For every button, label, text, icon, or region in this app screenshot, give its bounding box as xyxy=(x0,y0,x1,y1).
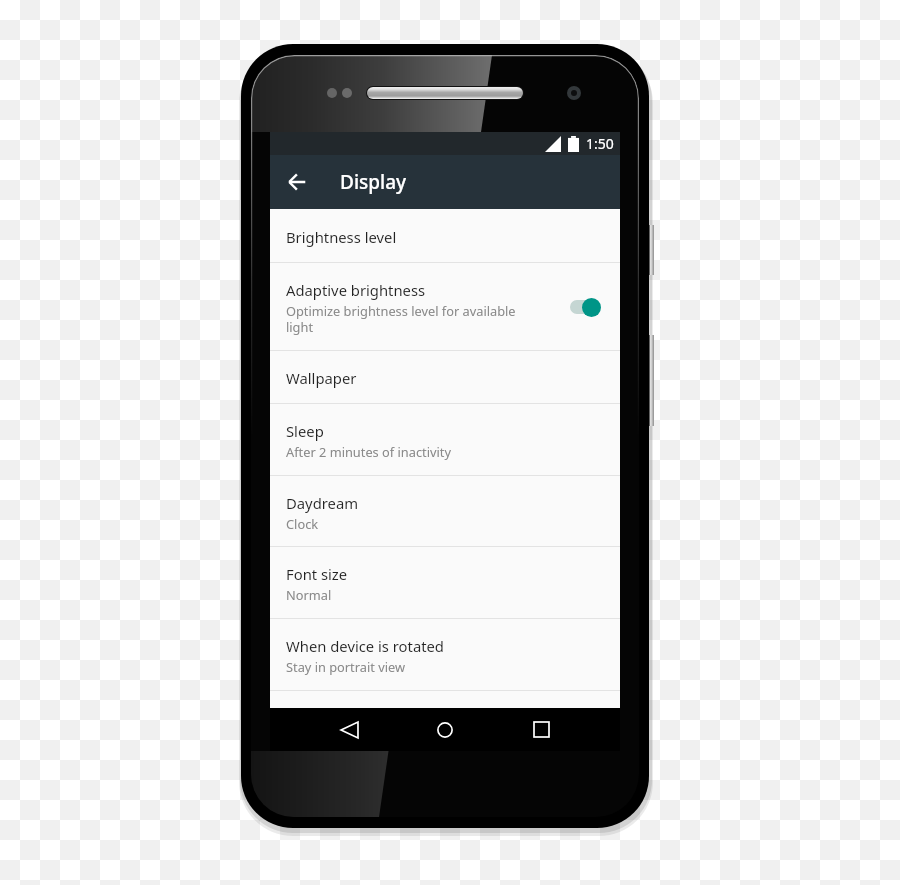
staticText: Daydream xyxy=(286,493,359,513)
staticText: Clock xyxy=(286,515,319,532)
button[interactable]: Sleep xyxy=(270,404,620,475)
button[interactable]: Adaptive brightness xyxy=(270,263,620,350)
staticText: Wallpaper xyxy=(286,368,357,388)
button[interactable]: Back xyxy=(327,708,371,751)
button[interactable]: Font size xyxy=(270,547,620,618)
staticText: Stay in portrait view xyxy=(286,658,406,675)
staticText: When device is rotated xyxy=(286,636,444,656)
button[interactable]: Wallpaper xyxy=(270,351,620,403)
staticText: 1:50 xyxy=(586,134,614,153)
button[interactable]: Back xyxy=(273,158,321,206)
button[interactable]: Adaptive brightness toggle xyxy=(570,294,601,320)
button[interactable]: Recents xyxy=(519,708,563,751)
staticText: Brightness level xyxy=(286,227,397,247)
staticText: Display xyxy=(340,169,407,195)
staticText: Font size xyxy=(286,564,348,584)
staticText: After 2 minutes of inactivity xyxy=(286,443,451,460)
button[interactable]: Daydream xyxy=(270,476,620,546)
staticText: Sleep xyxy=(286,421,324,441)
staticText: Normal xyxy=(286,586,332,603)
button[interactable]: Brightness level xyxy=(270,209,620,262)
button[interactable]: When device is rotated xyxy=(270,619,620,690)
staticText: Optimize brightness level for available … xyxy=(286,302,531,336)
staticText: Adaptive brightness xyxy=(286,280,426,300)
button[interactable]: Home xyxy=(423,708,467,751)
